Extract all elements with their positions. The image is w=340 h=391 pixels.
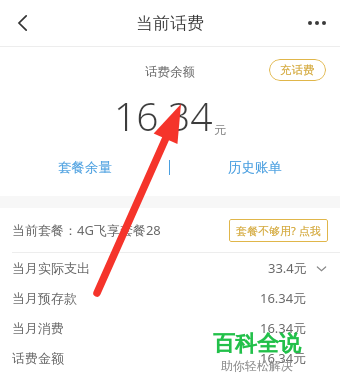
staticText: 话费金额 [12, 350, 64, 366]
staticText: 16.34元 [260, 319, 307, 337]
staticText: 16.34元 [260, 349, 307, 367]
staticText: 元 [214, 122, 226, 137]
staticText: 当月实际支出 [12, 260, 90, 276]
button[interactable]: 充话费 [269, 59, 326, 81]
button[interactable]: Back [0, 0, 46, 46]
staticText: 套餐不够用? 点我 [236, 223, 321, 238]
staticText: 当前话费 [136, 13, 204, 34]
staticText: 历史账单 [228, 159, 282, 176]
button[interactable]: 历史账单 [210, 151, 300, 184]
staticText: 百科全说 [213, 330, 301, 358]
button[interactable]: 话费金额 [0, 343, 340, 373]
button[interactable]: 当月预存款 [0, 283, 340, 313]
staticText: 套餐余量 [58, 159, 112, 176]
button[interactable]: 当月实际支出 [0, 253, 340, 283]
button[interactable]: 当月消费 [0, 313, 340, 343]
button[interactable]: 当前套餐：4G飞享套餐28 [0, 208, 340, 252]
button[interactable]: 套餐不够用? 点我 [229, 219, 328, 242]
staticText: 当前套餐：4G飞享套餐28 [12, 221, 161, 239]
staticText: 当月消费 [12, 320, 64, 336]
staticText: 当月预存款 [12, 290, 77, 306]
staticText: 助你轻松解决 [221, 358, 293, 373]
staticText: 16.34元 [260, 289, 307, 307]
staticText: 16.34 [114, 89, 213, 142]
staticText: 话费余额 [145, 64, 195, 80]
staticText: 充话费 [280, 63, 315, 77]
staticText: 33.4元 [268, 259, 307, 277]
button[interactable]: 套餐余量 [40, 151, 130, 184]
button[interactable]: More options [294, 0, 340, 46]
